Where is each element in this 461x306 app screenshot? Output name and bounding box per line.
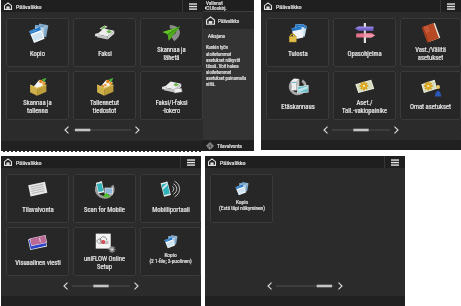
button[interactable]: Päävalikko <box>1 0 182 12</box>
staticText: Kopio <box>30 50 45 58</box>
staticText: Omat asetukset <box>410 103 451 111</box>
staticText: Päävalikko <box>218 18 240 24</box>
staticText: Päävalikko <box>220 159 246 166</box>
button[interactable]: Kopio <box>6 18 69 67</box>
button[interactable]: Next page <box>132 124 143 135</box>
button[interactable]: Skannaa ja lähetä <box>140 18 203 67</box>
staticText: Aset./ Tall.-vakiopainike <box>342 99 387 115</box>
button[interactable]: Previous page <box>320 124 331 135</box>
staticText: Tallennetut tiedostot <box>90 99 119 115</box>
button[interactable]: Faksi/I-faksi -lokero <box>140 71 203 120</box>
button[interactable]: Next page <box>131 280 142 291</box>
staticText: Mobiiliportaali <box>152 206 190 214</box>
button[interactable]: Kopio (2 1-file; 2-puolinen) <box>140 227 201 276</box>
staticText: Skannaa ja tallenna <box>23 99 52 115</box>
staticText: Visuaalinen viesti <box>15 259 61 267</box>
button[interactable]: Tilavalvonta <box>6 174 69 223</box>
staticText: Scan for Mobile <box>84 206 125 214</box>
button[interactable]: Etäskannaus <box>266 71 329 120</box>
button[interactable]: Previous page <box>61 124 72 135</box>
staticText: Faksi/I-faksi -lokero <box>155 99 188 115</box>
button[interactable]: Uloskirj. <box>205 5 227 11</box>
staticText: Kopio (2 1-file; 2-puolinen) <box>149 252 192 264</box>
button[interactable]: Opasohjelma <box>333 18 396 67</box>
staticText: Päävalikko <box>16 159 42 166</box>
button[interactable]: Omat asetukset <box>400 71 461 120</box>
button[interactable]: Menu <box>385 156 405 168</box>
button[interactable]: Kopio (Estä läpi näkyminen) <box>210 174 273 223</box>
button[interactable]: Faksi <box>73 18 136 67</box>
staticText: Kunkin työn aloitetummat asetukset näkyv… <box>206 45 247 87</box>
button[interactable]: Menu <box>181 156 201 168</box>
staticText: Faksi <box>98 50 112 58</box>
button[interactable]: uniFLOW Online Setup <box>73 227 136 276</box>
button[interactable]: Next page <box>391 124 402 135</box>
button[interactable]: Menu <box>441 0 461 12</box>
staticText: Valinnat <box>206 0 223 6</box>
button[interactable]: Tallennetut tiedostot <box>73 71 136 120</box>
button[interactable]: Previous page <box>60 280 71 291</box>
button[interactable]: Tilavalvonta <box>203 140 254 151</box>
button[interactable]: Päävalikko <box>205 156 384 168</box>
button[interactable]: Päävalikko <box>1 156 180 168</box>
staticText: uniFLOW Online Setup <box>84 255 125 271</box>
staticText: Päävalikko <box>276 3 302 10</box>
button[interactable]: Previous page <box>264 280 275 291</box>
staticText: Aikajana <box>208 33 226 39</box>
staticText: Kopio (Estä läpi näkyminen) <box>219 199 265 211</box>
button[interactable]: Scan for Mobile <box>73 174 136 223</box>
staticText: Opasohjelma <box>347 50 382 58</box>
button[interactable]: Päävalikko <box>261 0 440 12</box>
button[interactable]: Visuaalinen viesti <box>6 227 69 276</box>
staticText: Tulosta <box>288 50 308 58</box>
button[interactable]: Vast./Välitä asetukset <box>400 18 461 67</box>
staticText: Uloskirj. <box>210 5 227 11</box>
staticText: Etäskannaus <box>281 103 315 111</box>
staticText: Vast./Välitä asetukset <box>415 46 446 62</box>
staticText: Päävalikko <box>16 3 42 10</box>
button[interactable]: Aset./ Tall.-vakiopainike <box>333 71 396 120</box>
staticText: Tilavalvonta <box>22 206 54 214</box>
staticText: Tilavalvonta <box>217 143 242 149</box>
button[interactable]: Päävalikko <box>203 12 254 29</box>
button[interactable]: Next page <box>335 280 346 291</box>
button[interactable]: Tulosta <box>266 18 329 67</box>
button[interactable]: Mobiiliportaali <box>140 174 201 223</box>
button[interactable]: Menu <box>183 0 203 12</box>
staticText: Skannaa ja lähetä <box>157 46 186 62</box>
button[interactable]: Skannaa ja tallenna <box>6 71 69 120</box>
